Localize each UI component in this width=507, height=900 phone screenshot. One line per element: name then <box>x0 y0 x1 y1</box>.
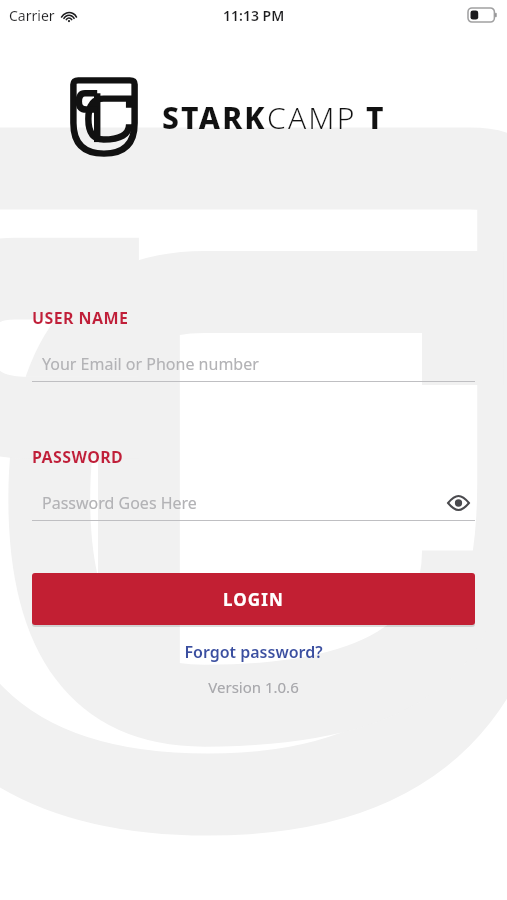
button[interactable]: LOGIN <box>32 573 475 625</box>
staticText: STARK <box>162 97 267 138</box>
button[interactable]: Your Email or Phone number <box>32 347 475 381</box>
staticText: Your Email or Phone number <box>42 353 259 375</box>
button[interactable]: Password Goes Here <box>32 486 475 520</box>
staticText: T <box>366 97 386 138</box>
staticText: 11:13 PM <box>223 6 285 25</box>
staticText: Password Goes Here <box>42 492 197 514</box>
staticText: PASSWORD <box>32 446 124 468</box>
staticText: Carrier <box>9 6 55 25</box>
staticText: LOGIN <box>223 588 284 611</box>
staticText: Forgot password? <box>184 641 323 663</box>
staticText: USER NAME <box>32 307 129 329</box>
button[interactable]: Forgot password? <box>174 637 333 667</box>
staticText: CAMP <box>267 97 357 138</box>
button[interactable]: Show password <box>441 486 475 520</box>
staticText: Version 1.0.6 <box>32 677 475 697</box>
